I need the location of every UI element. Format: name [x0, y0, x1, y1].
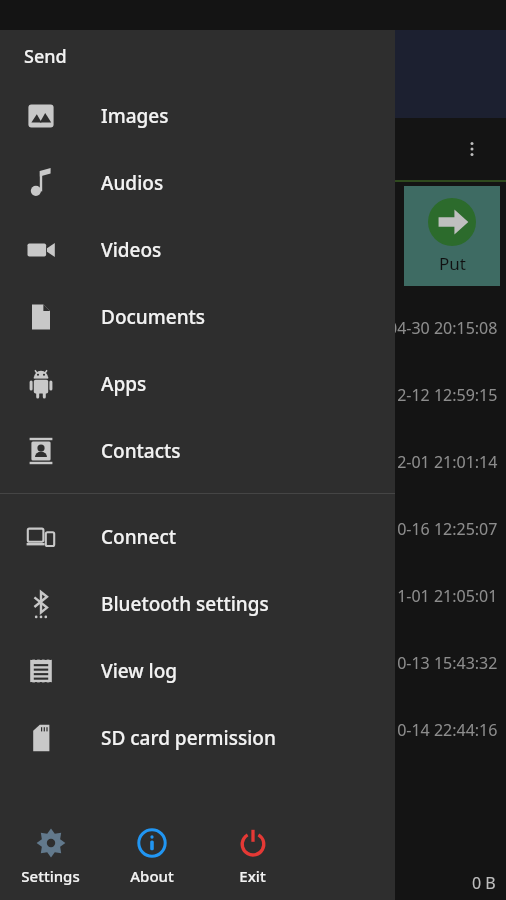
staticText: About [130, 866, 174, 886]
staticText: Audios [101, 170, 164, 196]
staticText: View log [101, 658, 178, 684]
staticText: Send [24, 44, 67, 69]
staticText: SD card permission [101, 725, 276, 751]
staticText: 10-14 22:44:16 [388, 719, 498, 741]
staticText: Exit [239, 866, 266, 886]
staticText: Apps [101, 371, 147, 397]
button[interactable]: 11-01 21:05:01 [0, 562, 506, 629]
button[interactable]: Exit [202, 814, 303, 900]
button[interactable]: 04-30 20:15:08 [0, 294, 506, 361]
staticText: Contacts [101, 438, 181, 464]
button[interactable]: Images [0, 82, 395, 149]
button[interactable]: Contacts [0, 417, 395, 484]
staticText: Images [101, 103, 169, 129]
staticText: 12-01 21:01:14 [388, 451, 498, 473]
staticText: Documents [101, 304, 206, 330]
staticText: Videos [101, 237, 162, 263]
staticText: 04-30 20:15:08 [388, 317, 498, 339]
button[interactable]: About [101, 814, 202, 900]
button[interactable]: 12-01 21:01:14 [0, 428, 506, 495]
staticText: 12-12 12:59:15 [388, 384, 498, 406]
button[interactable]: Connect [0, 503, 395, 570]
button[interactable]: Documents [0, 283, 395, 350]
button[interactable]: 10-13 15:43:32 [0, 629, 506, 696]
button[interactable]: Settings [0, 814, 101, 900]
staticText: 0 B [472, 872, 496, 894]
button[interactable]: Apps [0, 350, 395, 417]
staticText: Put [439, 252, 466, 275]
staticText: 10-16 12:25:07 [388, 518, 498, 540]
button[interactable]: More options [452, 129, 492, 169]
button[interactable]: 12-12 12:59:15 [0, 361, 506, 428]
staticText: Bluetooth settings [101, 591, 269, 617]
button[interactable]: Audios [0, 149, 395, 216]
button[interactable]: Put [404, 186, 500, 286]
button[interactable]: Bluetooth settings [0, 570, 395, 637]
staticText: 10-13 15:43:32 [388, 652, 498, 674]
staticText: Settings [21, 866, 80, 886]
staticText: Connect [101, 524, 177, 550]
button[interactable]: SD card permission [0, 704, 395, 771]
button[interactable]: View log [0, 637, 395, 704]
button[interactable]: Videos [0, 216, 395, 283]
button[interactable]: 10-16 12:25:07 [0, 495, 506, 562]
staticText: 11-01 21:05:01 [388, 585, 498, 607]
button[interactable]: 10-14 22:44:16 [0, 696, 506, 763]
